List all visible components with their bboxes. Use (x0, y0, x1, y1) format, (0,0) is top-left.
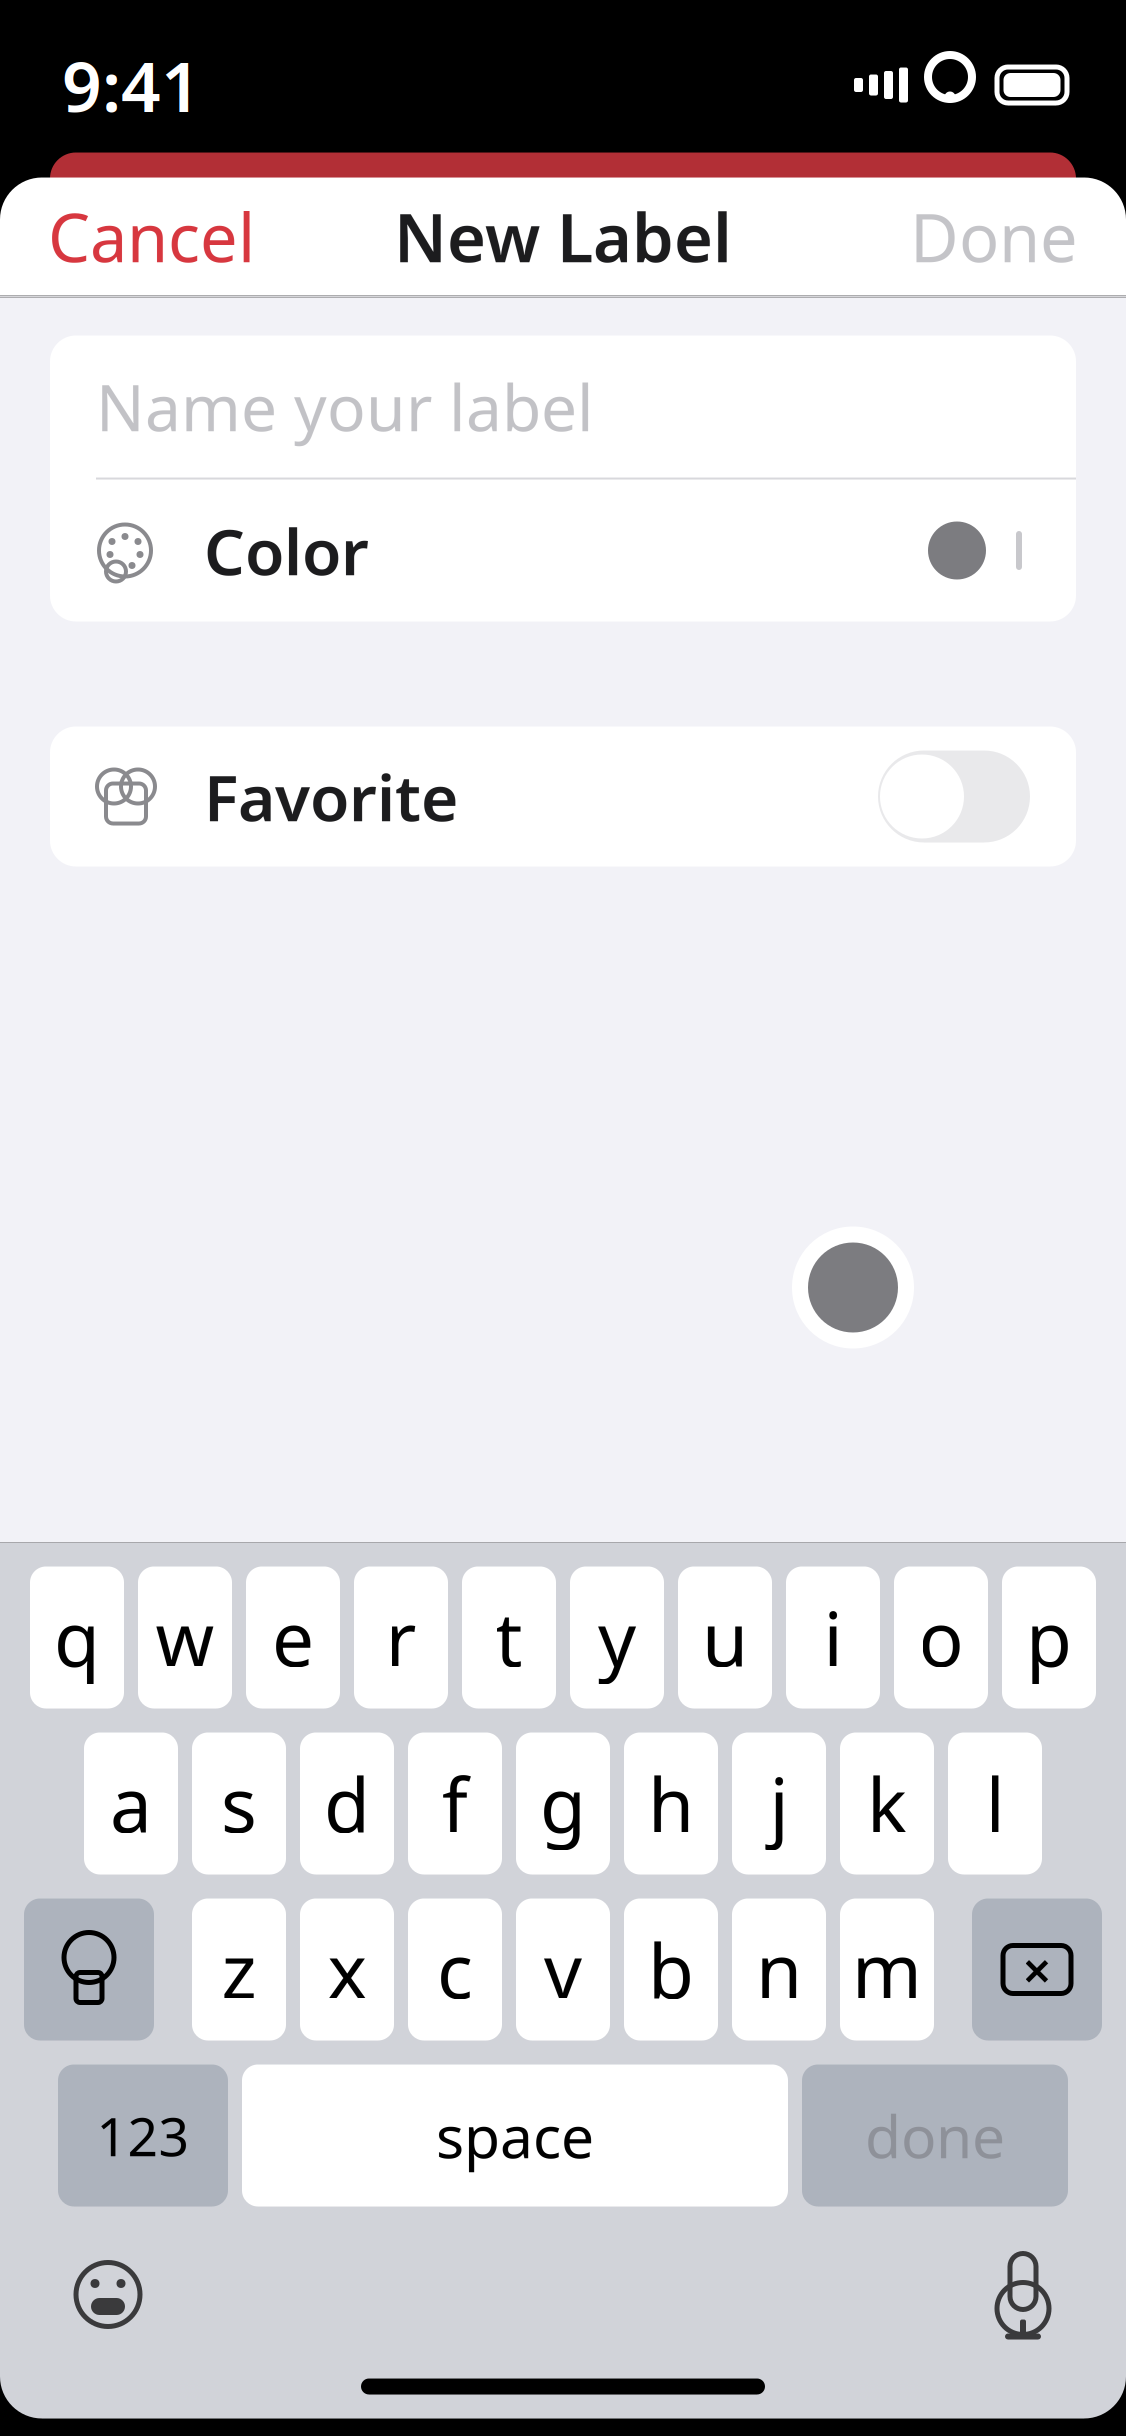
button[interactable]: e (246, 1566, 340, 1708)
button[interactable]: o (894, 1566, 988, 1708)
staticText: r (385, 1588, 416, 1687)
button[interactable]: c (408, 1898, 502, 2040)
staticText: Done (910, 192, 1078, 281)
button[interactable]: l (948, 1732, 1042, 1874)
button[interactable]: g (516, 1732, 610, 1874)
staticText: z (221, 1920, 256, 2019)
staticText: × (1022, 1936, 1051, 2003)
staticText: Color (204, 508, 369, 593)
staticText: e (272, 1588, 314, 1687)
button[interactable]: Delete (972, 1898, 1102, 2040)
staticText: w (155, 1588, 214, 1687)
staticText: 9:41 (62, 39, 201, 131)
button[interactable]: space (242, 2064, 788, 2206)
button[interactable]: Done (862, 166, 1126, 307)
button[interactable]: i (786, 1566, 880, 1708)
button[interactable]: Dictation (968, 2222, 1078, 2366)
staticText: d (324, 1754, 370, 1853)
staticText: c (437, 1920, 473, 2019)
button[interactable]: Emoji (48, 2234, 168, 2354)
button[interactable]: y (570, 1566, 664, 1708)
staticText: q (54, 1588, 100, 1687)
staticText: 123 (96, 2100, 189, 2171)
staticText: New Label (394, 192, 732, 281)
staticText: y (598, 1588, 636, 1687)
button[interactable]: v (516, 1898, 610, 2040)
staticText: a (110, 1754, 152, 1853)
staticText: m (852, 1920, 922, 2019)
staticText: p (1026, 1588, 1072, 1687)
staticText: k (867, 1754, 907, 1853)
button[interactable]: Shift (24, 1898, 154, 2040)
staticText: g (540, 1754, 586, 1853)
staticText: o (918, 1588, 963, 1687)
button[interactable]: z (192, 1898, 286, 2040)
button[interactable]: w (138, 1566, 232, 1708)
staticText: l (985, 1754, 1004, 1853)
button[interactable]: j (732, 1732, 826, 1874)
staticText: i (823, 1588, 842, 1687)
staticText: u (702, 1588, 748, 1687)
button[interactable]: x (300, 1898, 394, 2040)
staticText: n (756, 1920, 802, 2019)
staticText: v (544, 1920, 582, 2019)
button[interactable]: t (462, 1566, 556, 1708)
button[interactable]: 123 (58, 2064, 228, 2206)
button[interactable]: done (802, 2064, 1068, 2206)
staticText: f (442, 1754, 468, 1853)
button[interactable]: n (732, 1898, 826, 2040)
button[interactable]: Color (50, 479, 1076, 621)
staticText: Favorite (204, 754, 458, 839)
staticText: b (648, 1920, 694, 2019)
staticText: x (327, 1920, 366, 2019)
staticText: done (865, 2096, 1005, 2174)
staticText: space (436, 2096, 594, 2174)
button[interactable]: f (408, 1732, 502, 1874)
button[interactable]: r (354, 1566, 448, 1708)
staticText: t (495, 1588, 522, 1687)
button[interactable]: h (624, 1732, 718, 1874)
staticText: j (769, 1754, 788, 1853)
button[interactable]: Cancel (0, 166, 303, 307)
button[interactable]: k (840, 1732, 934, 1874)
button[interactable]: u (678, 1566, 772, 1708)
button[interactable]: b (624, 1898, 718, 2040)
button[interactable]: a (84, 1732, 178, 1874)
button[interactable]: q (30, 1566, 124, 1708)
staticText: s (221, 1754, 257, 1853)
staticText: h (648, 1754, 694, 1853)
staticText: Name your label (96, 364, 594, 449)
button[interactable]: d (300, 1732, 394, 1874)
staticText: Cancel (48, 192, 255, 281)
button[interactable]: p (1002, 1566, 1096, 1708)
button[interactable]: m (840, 1898, 934, 2040)
button[interactable]: s (192, 1732, 286, 1874)
button[interactable]: Favorite (50, 726, 1076, 866)
